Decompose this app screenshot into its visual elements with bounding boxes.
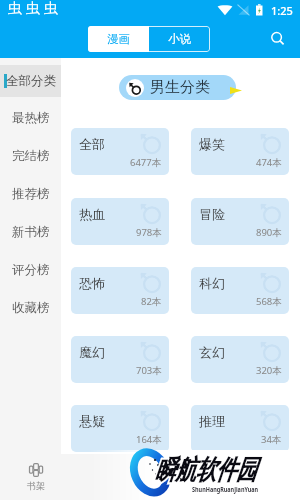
button[interactable]: 爆笑 — [191, 128, 289, 175]
staticText: 虫 — [26, 0, 44, 18]
staticText: 6477本 — [130, 156, 162, 169]
button[interactable]: 男生分类 — [119, 75, 236, 100]
staticText: 爆笑 — [199, 136, 225, 152]
button[interactable]: 新书榜 — [0, 213, 61, 251]
staticText: 虫 — [44, 0, 62, 18]
button[interactable]: Search — [264, 25, 290, 51]
button[interactable]: 热血 — [71, 198, 169, 245]
staticText: 完结榜 — [12, 148, 50, 164]
staticText: 474本 — [256, 156, 282, 169]
staticText: 瞬航软件园 — [155, 453, 256, 487]
staticText: 新书榜 — [12, 224, 50, 240]
staticText: 玄幻 — [199, 344, 225, 360]
staticText: 978本 — [136, 226, 162, 239]
staticText: 82本 — [141, 295, 162, 308]
staticText: 悬疑 — [79, 413, 105, 429]
staticText: 虫 — [8, 0, 26, 18]
staticText: 小说 — [168, 32, 191, 46]
staticText: 漫画 — [107, 32, 130, 46]
button[interactable]: 科幻 — [191, 267, 289, 314]
staticText: ShunHangRuanJianYuan — [192, 484, 258, 494]
staticText: 冒险 — [199, 206, 225, 222]
button[interactable]: 推荐榜 — [0, 175, 61, 213]
staticText: 恐怖 — [79, 275, 105, 291]
button[interactable]: 悬疑 — [71, 405, 169, 452]
button[interactable]: 小说 — [149, 26, 210, 52]
staticText: 评分榜 — [12, 262, 50, 278]
staticText: 推荐榜 — [12, 186, 50, 202]
staticText: 瞬航软件园 — [155, 453, 256, 487]
button[interactable]: 评分榜 — [0, 251, 61, 289]
staticText: 热血 — [79, 206, 105, 222]
button[interactable]: 最热榜 — [0, 99, 61, 137]
button[interactable]: 玄幻 — [191, 336, 289, 383]
button[interactable]: 魔幻 — [71, 336, 169, 383]
staticText: 164本 — [136, 433, 162, 446]
staticText: 全部 — [79, 136, 105, 152]
staticText: 703本 — [136, 364, 162, 377]
button[interactable]: 全部 — [71, 128, 169, 175]
staticText: 推理 — [199, 413, 225, 429]
staticText: 全部分类 — [6, 73, 56, 89]
button[interactable]: 恐怖 — [71, 267, 169, 314]
staticText: 890本 — [256, 226, 282, 239]
staticText: 34本 — [261, 433, 282, 446]
staticText: 收藏榜 — [12, 300, 50, 316]
staticText: 1:25 — [271, 3, 293, 18]
staticText: 书架 — [27, 480, 45, 491]
staticText: 魔幻 — [79, 344, 105, 360]
staticText: 科幻 — [199, 275, 225, 291]
button[interactable]: 漫画 — [88, 26, 149, 52]
button[interactable]: 冒险 — [191, 198, 289, 245]
button[interactable]: 推理 — [191, 405, 289, 452]
button[interactable]: 全部分类 — [0, 65, 61, 97]
staticText: 男生分类 — [150, 78, 210, 97]
staticText: 568本 — [256, 295, 282, 308]
staticText: 320本 — [256, 364, 282, 377]
button[interactable]: 收藏榜 — [0, 289, 61, 327]
staticText: 最热榜 — [12, 110, 50, 126]
button[interactable]: 完结榜 — [0, 137, 61, 175]
button[interactable]: 书架 — [22, 454, 50, 500]
